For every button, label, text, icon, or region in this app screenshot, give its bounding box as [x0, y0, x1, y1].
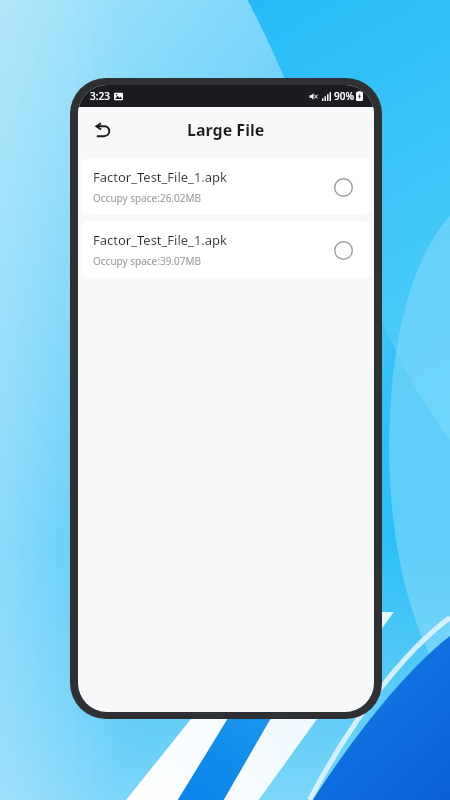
staticText: 90%	[334, 89, 354, 103]
staticText: Large File	[187, 119, 265, 141]
staticText: Occupy space:39.07MB	[93, 254, 202, 268]
staticText: 3:23	[90, 89, 110, 103]
staticText: Factor_Test_File_1.apk	[93, 168, 228, 186]
button[interactable]: Factor_Test_File_1.apk	[81, 158, 371, 215]
button[interactable]: Select file	[328, 235, 358, 265]
staticText: Factor_Test_File_1.apk	[93, 231, 228, 249]
staticText: Occupy space:26.02MB	[93, 191, 202, 205]
button[interactable]: Select file	[328, 172, 358, 202]
button[interactable]: Back	[84, 112, 120, 148]
button[interactable]: Factor_Test_File_1.apk	[81, 221, 371, 278]
